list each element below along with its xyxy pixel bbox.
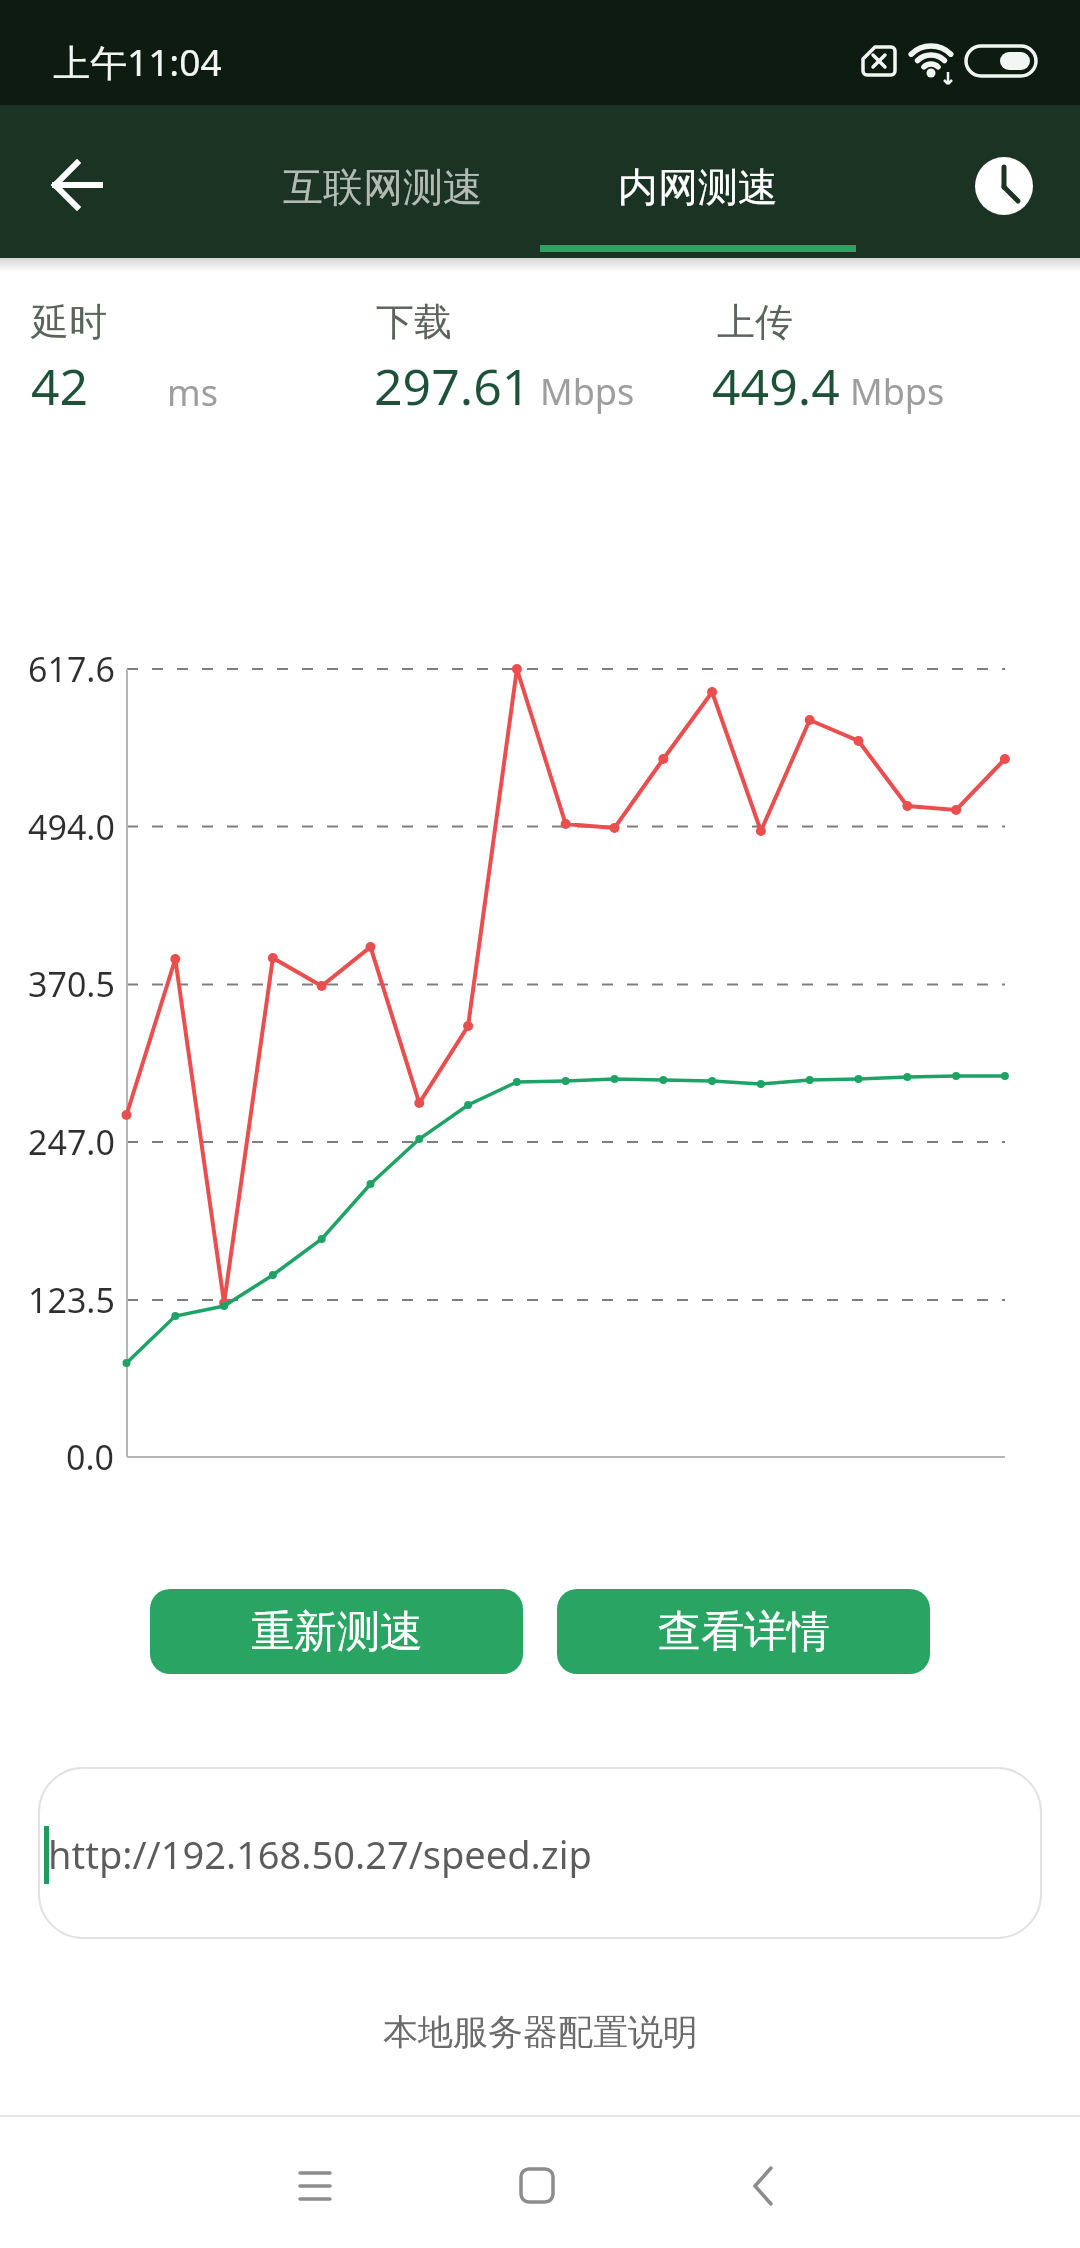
staticText: 查看详情 [658, 1605, 830, 1659]
staticText: 370.5 [28, 961, 115, 1007]
staticText: ms [167, 368, 218, 417]
button[interactable]: 本地服务器配置说明 [190, 2000, 890, 2064]
button[interactable]: 查看详情 [557, 1589, 930, 1674]
button[interactable] [40, 150, 115, 222]
staticText: 内网测速 [618, 162, 778, 212]
staticText: 下载 [376, 298, 452, 346]
staticText: 延时 [31, 298, 107, 346]
staticText: 重新测速 [251, 1605, 423, 1659]
staticText: 上午11:04 [53, 36, 222, 87]
staticText: 本地服务器配置说明 [383, 2010, 698, 2054]
button[interactable] [970, 152, 1038, 220]
button[interactable]: 内网测速 [540, 123, 856, 251]
staticText: 297.61 [374, 352, 531, 420]
button[interactable]: 互联网测速 [240, 123, 525, 251]
staticText: 上传 [717, 298, 793, 346]
button[interactable] [723, 2146, 803, 2226]
staticText: 互联网测速 [283, 162, 483, 212]
staticText: 617.6 [28, 646, 115, 692]
staticText: 42 [31, 352, 89, 420]
staticText: 247.0 [28, 1119, 115, 1165]
staticText: 494.0 [28, 804, 115, 850]
staticText: Mbps [540, 367, 635, 416]
button[interactable] [38, 1767, 1042, 1939]
staticText: 123.5 [28, 1277, 115, 1323]
staticText: 0.0 [66, 1434, 115, 1480]
staticText: 449.4 [712, 352, 840, 420]
button[interactable] [497, 2146, 577, 2226]
button[interactable] [275, 2146, 355, 2226]
staticText: http://192.168.50.27/speed.zip [48, 1828, 592, 1880]
button[interactable]: 重新测速 [150, 1589, 523, 1674]
staticText: Mbps [850, 367, 945, 416]
